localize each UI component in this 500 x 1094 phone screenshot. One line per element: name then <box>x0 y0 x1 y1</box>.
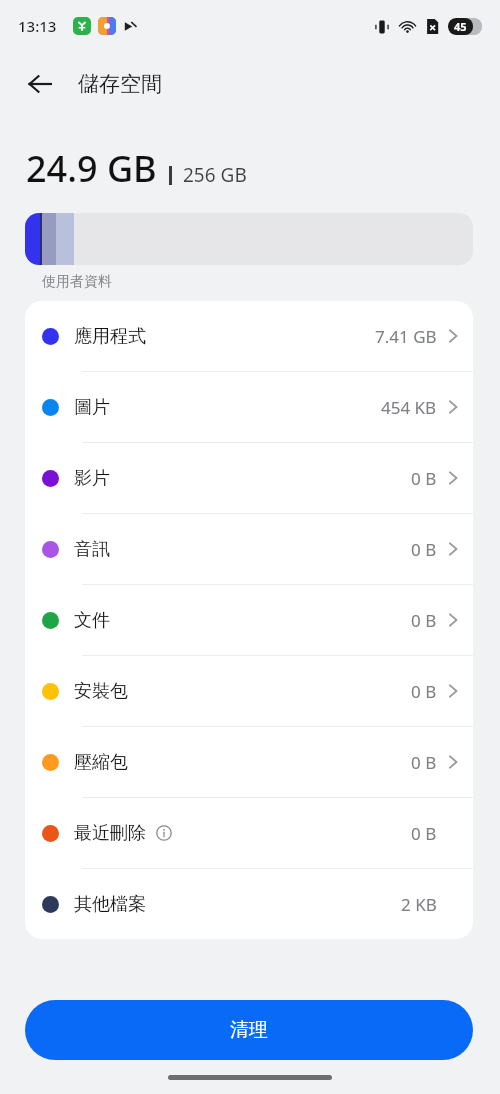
staticText: 應用程式 <box>74 325 146 348</box>
staticText: 256 GB <box>183 162 247 188</box>
button[interactable]: 最近刪除 <box>25 798 473 868</box>
button[interactable]: 影片 <box>25 443 473 513</box>
staticText: 壓縮包 <box>74 751 128 774</box>
staticText: 0 B <box>411 609 437 632</box>
staticText: 2 KB <box>401 893 437 916</box>
button[interactable]: 其他檔案 <box>25 869 473 939</box>
staticText: 文件 <box>74 609 110 632</box>
button[interactable]: 圖片 <box>25 372 473 442</box>
button[interactable]: Back <box>18 62 62 106</box>
staticText: 24.9 GB <box>26 144 157 193</box>
button[interactable]: 壓縮包 <box>25 727 473 797</box>
staticText: 最近刪除 <box>74 822 146 845</box>
staticText: 圖片 <box>74 396 110 419</box>
button[interactable]: 安裝包 <box>25 656 473 726</box>
staticText: 45 <box>454 19 467 34</box>
staticText: 0 B <box>411 822 437 845</box>
staticText: 儲存空間 <box>78 71 162 97</box>
staticText: 使用者資料 <box>42 273 112 291</box>
staticText: 0 B <box>411 538 437 561</box>
button[interactable]: 清理 <box>25 1000 473 1060</box>
staticText: 音訊 <box>74 538 110 561</box>
staticText: 影片 <box>74 467 110 490</box>
staticText: 0 B <box>411 751 437 774</box>
staticText: 0 B <box>411 680 437 703</box>
staticText: 7.41 GB <box>375 325 437 348</box>
button[interactable]: 應用程式 <box>25 301 473 371</box>
other: Info <box>156 825 172 841</box>
staticText: 0 B <box>411 467 437 490</box>
staticText: 454 KB <box>381 396 437 419</box>
staticText: 13:13 <box>18 16 57 36</box>
staticText: 安裝包 <box>74 680 128 703</box>
staticText: 其他檔案 <box>74 893 146 916</box>
button[interactable]: 音訊 <box>25 514 473 584</box>
staticText: 清理 <box>230 1018 268 1042</box>
button[interactable]: 文件 <box>25 585 473 655</box>
